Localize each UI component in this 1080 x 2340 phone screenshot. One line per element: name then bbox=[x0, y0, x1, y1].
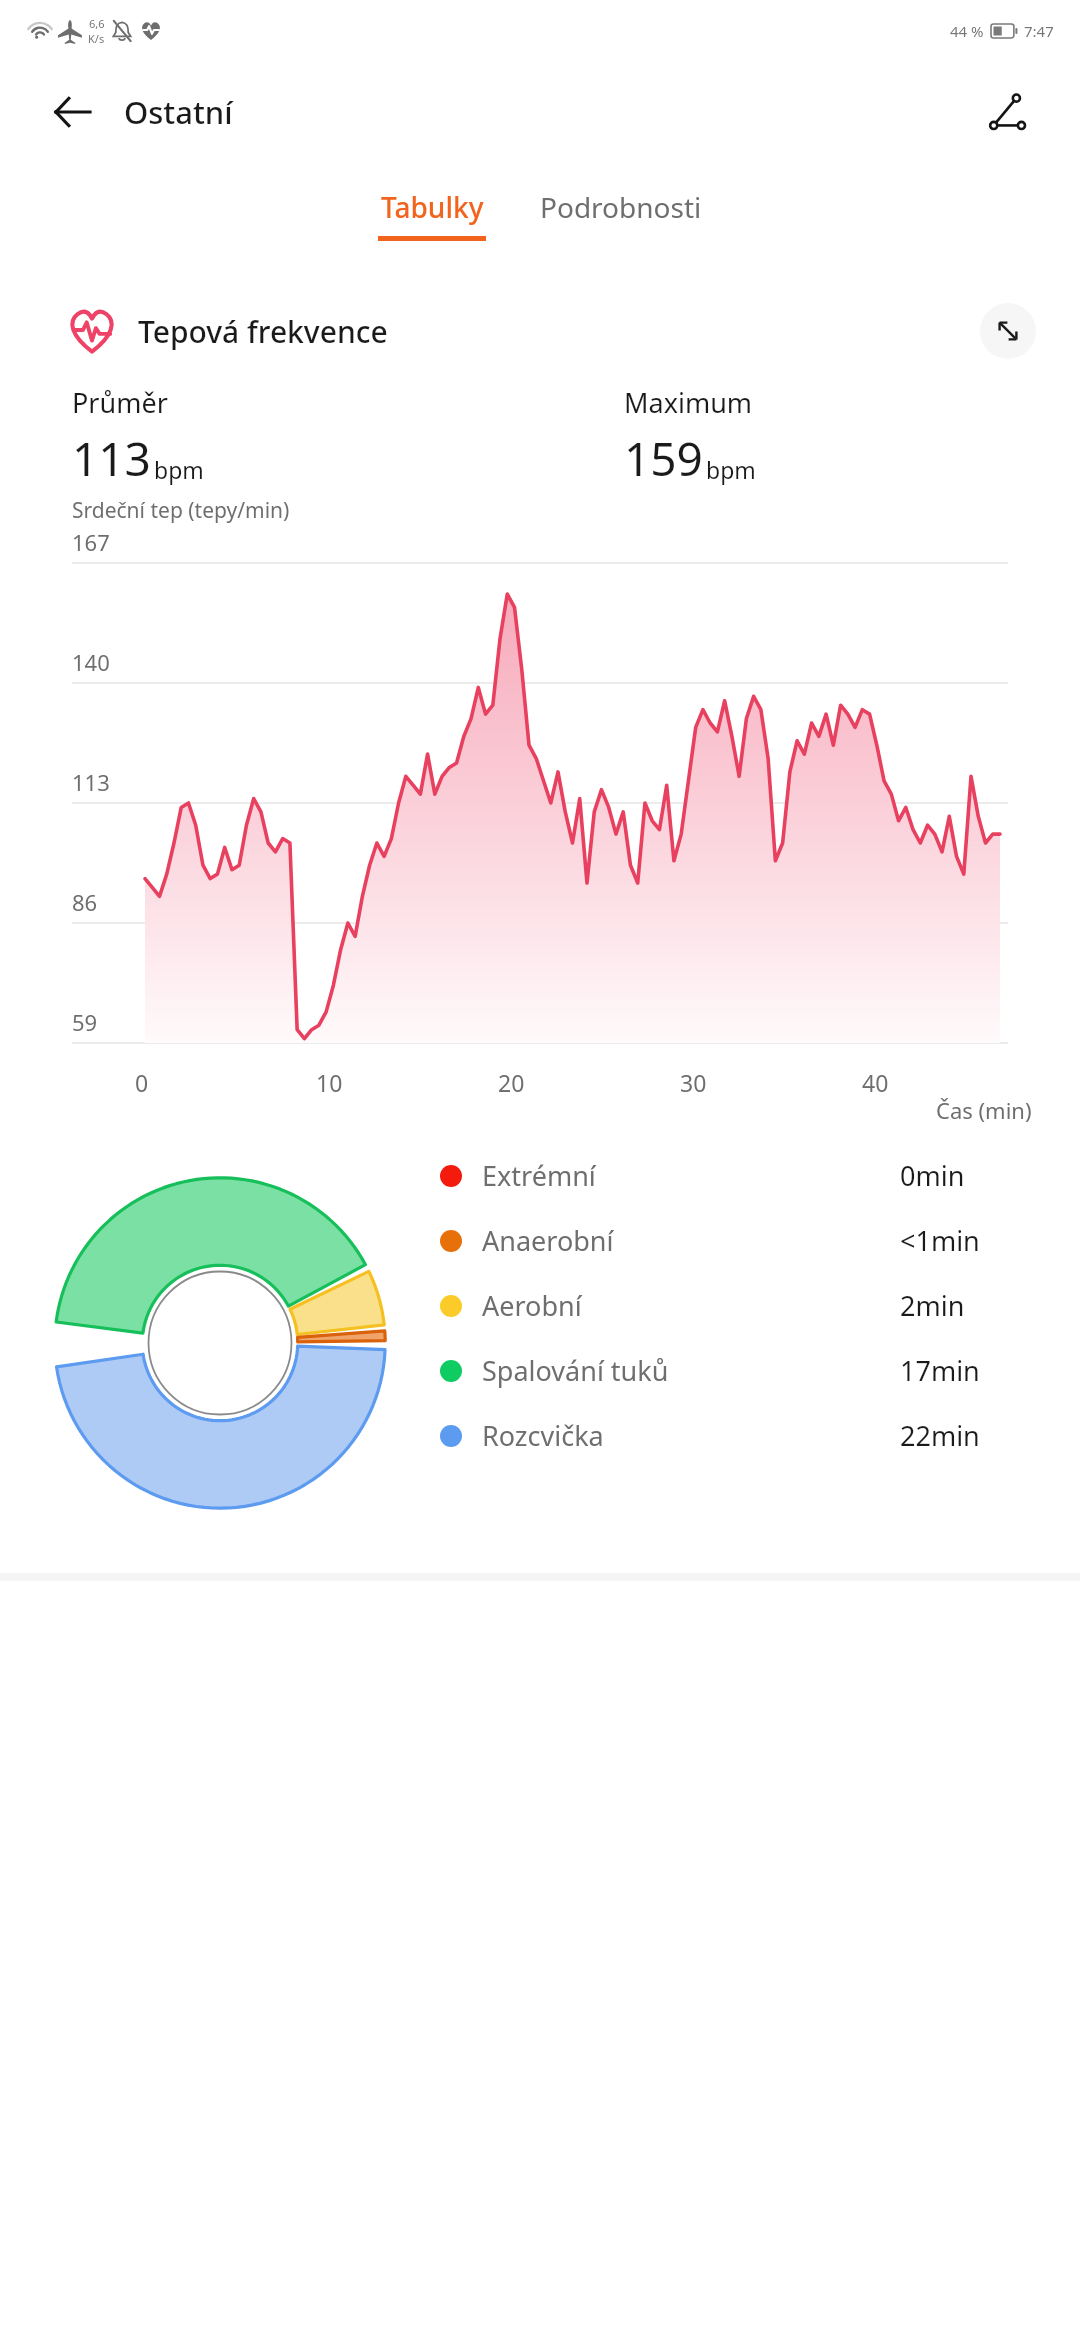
button[interactable]: Back bbox=[46, 86, 98, 138]
staticText: Podrobnosti bbox=[540, 188, 702, 226]
staticText: Čas (min) bbox=[936, 1095, 1032, 1125]
staticText: 113 bbox=[72, 427, 151, 490]
button[interactable]: Aerobní bbox=[440, 1287, 1080, 1324]
staticText: Extrémní bbox=[482, 1157, 596, 1194]
staticText: bpm bbox=[706, 454, 756, 485]
staticText: 17min bbox=[900, 1352, 1080, 1389]
button[interactable]: Tabulky bbox=[370, 188, 494, 241]
staticText: 44 % bbox=[950, 21, 984, 41]
button[interactable]: Share bbox=[980, 84, 1036, 140]
staticText: Rozcvička bbox=[482, 1417, 604, 1454]
staticText: 159 bbox=[624, 427, 703, 490]
staticText: bpm bbox=[154, 454, 204, 485]
staticText: Maximum bbox=[624, 384, 753, 421]
staticText: 40 bbox=[862, 1067, 889, 1098]
button[interactable]: Podrobnosti bbox=[532, 188, 710, 241]
staticText: Spalování tuků bbox=[482, 1352, 669, 1389]
staticText: Tepová frekvence bbox=[138, 311, 388, 352]
staticText: <1min bbox=[900, 1222, 1080, 1259]
staticText: 113 bbox=[72, 767, 110, 797]
staticText: Srdeční tep (tepy/min) bbox=[72, 496, 290, 525]
staticText: 167 bbox=[72, 527, 110, 557]
staticText: 59 bbox=[72, 1007, 98, 1037]
staticText: Průměr bbox=[72, 384, 168, 421]
staticText: 22min bbox=[900, 1417, 1080, 1454]
staticText: 6,6 bbox=[89, 16, 105, 31]
staticText: Ostatní bbox=[124, 91, 233, 133]
staticText: Tabulky bbox=[381, 188, 484, 226]
button[interactable]: Anaerobní bbox=[440, 1222, 1080, 1259]
button[interactable]: Expand bbox=[980, 303, 1036, 359]
staticText: 7:47 bbox=[1024, 21, 1054, 41]
button[interactable]: Spalování tuků bbox=[440, 1352, 1080, 1389]
staticText: Anaerobní bbox=[482, 1222, 614, 1259]
staticText: K/s bbox=[88, 31, 105, 46]
staticText: 0min bbox=[900, 1157, 1080, 1194]
button[interactable]: Rozcvička bbox=[440, 1417, 1080, 1454]
staticText: 30 bbox=[680, 1067, 707, 1098]
staticText: 2min bbox=[900, 1287, 1080, 1324]
staticText: 140 bbox=[72, 647, 110, 677]
staticText: 86 bbox=[72, 887, 98, 917]
staticText: 0 bbox=[135, 1067, 149, 1098]
staticText: 20 bbox=[498, 1067, 525, 1098]
staticText: 10 bbox=[316, 1067, 343, 1098]
button[interactable]: Extrémní bbox=[440, 1157, 1080, 1194]
staticText: Aerobní bbox=[482, 1287, 582, 1324]
